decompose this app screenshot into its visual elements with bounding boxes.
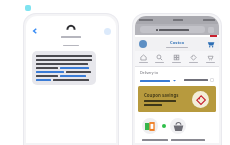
button[interactable]: Back — [31, 27, 39, 35]
button[interactable]: Coupon savings — [138, 86, 216, 112]
button[interactable]: Details — [104, 28, 111, 35]
button[interactable] — [140, 79, 176, 82]
button[interactable] — [32, 51, 96, 85]
button[interactable]: Search — [151, 51, 168, 66]
staticText: Costco — [170, 40, 185, 46]
button[interactable]: Services — [202, 51, 219, 66]
staticText: Delivery to — [140, 70, 159, 75]
button[interactable]: Cart — [207, 40, 215, 48]
button[interactable]: Product — [142, 118, 158, 134]
button[interactable]: Departments — [168, 51, 185, 66]
button[interactable]: Home — [135, 51, 151, 66]
button[interactable]: Basket — [170, 118, 186, 134]
button[interactable] — [140, 26, 205, 33]
button[interactable]: Coupons — [185, 51, 202, 66]
staticText: Coupon savings — [144, 92, 179, 98]
button[interactable] — [184, 78, 214, 82]
button[interactable]: Menu — [139, 40, 147, 48]
